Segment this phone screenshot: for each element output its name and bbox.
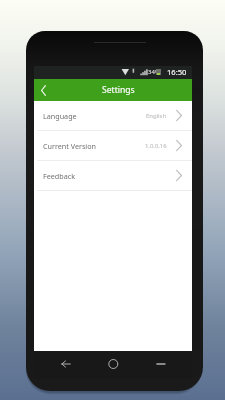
staticText: English: [146, 112, 167, 120]
button[interactable]: Feedback: [34, 161, 192, 191]
staticText: 16:50: [167, 67, 187, 77]
button[interactable]: Language: [34, 101, 192, 131]
staticText: Language: [43, 111, 77, 121]
button[interactable]: Current Version: [34, 131, 192, 161]
staticText: Feedback: [43, 171, 75, 181]
staticText: Settings: [102, 84, 135, 96]
staticText: 34%: [148, 68, 160, 76]
staticText: 1.0.0.16: [145, 142, 167, 150]
button[interactable]: Back: [34, 79, 56, 101]
staticText: Current Version: [43, 141, 97, 151]
